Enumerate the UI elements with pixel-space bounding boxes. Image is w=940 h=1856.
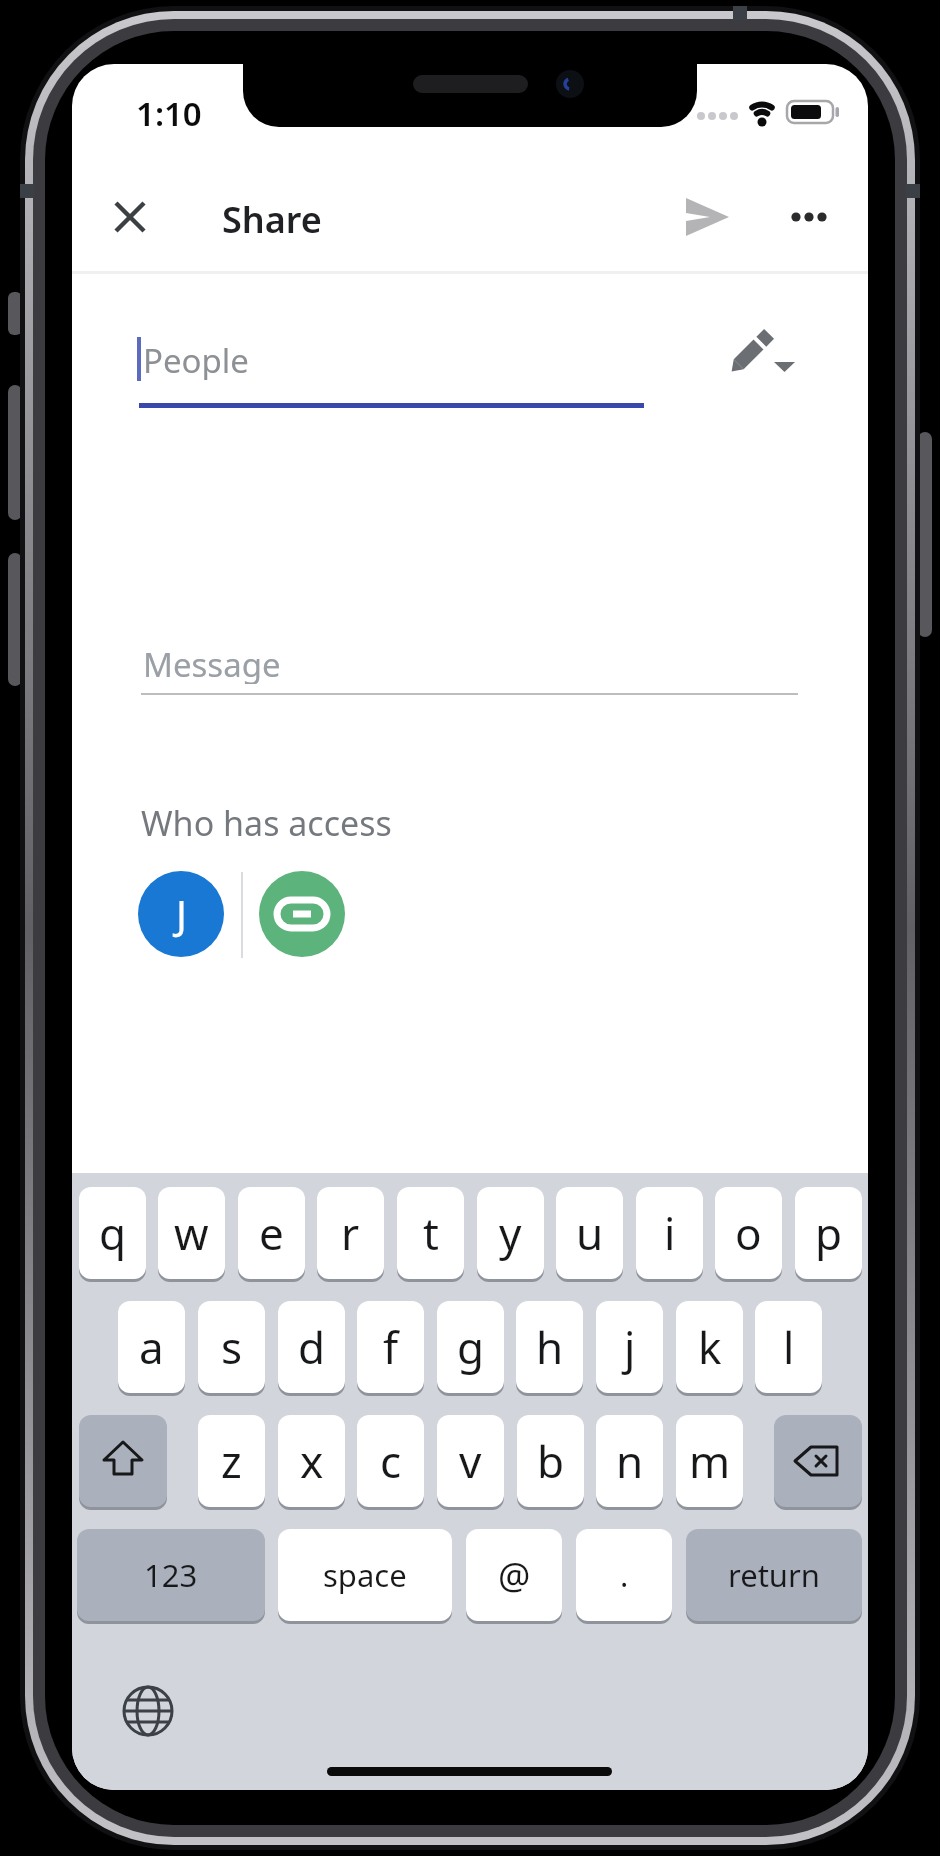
staticText: g xyxy=(457,1317,485,1377)
button[interactable]: s xyxy=(198,1301,265,1393)
button[interactable]: w xyxy=(158,1187,225,1279)
button[interactable]: x xyxy=(278,1415,345,1507)
button[interactable]: @ xyxy=(466,1529,562,1621)
button[interactable]: c xyxy=(357,1415,424,1507)
button[interactable]: h xyxy=(516,1301,583,1393)
button[interactable]: l xyxy=(755,1301,822,1393)
staticText: s xyxy=(221,1317,243,1377)
staticText: z xyxy=(221,1431,242,1491)
button[interactable]: y xyxy=(477,1187,544,1279)
button[interactable]: 123 xyxy=(77,1529,265,1621)
staticText: x xyxy=(300,1431,324,1491)
staticText: j xyxy=(624,1317,636,1377)
staticText: r xyxy=(341,1203,360,1263)
staticText: b xyxy=(537,1431,565,1491)
button[interactable]: . xyxy=(576,1529,672,1621)
staticText: i xyxy=(664,1203,676,1263)
staticText: q xyxy=(99,1203,127,1263)
staticText: Share xyxy=(222,195,322,239)
button[interactable]: q xyxy=(79,1187,146,1279)
staticText: People xyxy=(143,338,249,380)
staticText: e xyxy=(259,1203,284,1263)
button[interactable]: o xyxy=(715,1187,782,1279)
button[interactable] xyxy=(79,1415,167,1507)
staticText: a xyxy=(139,1317,164,1377)
staticText: Message xyxy=(143,642,281,684)
button[interactable]: n xyxy=(596,1415,663,1507)
button[interactable]: a xyxy=(118,1301,185,1393)
staticText: p xyxy=(815,1203,843,1263)
button[interactable] xyxy=(259,871,345,957)
button[interactable]: k xyxy=(676,1301,743,1393)
button[interactable] xyxy=(782,203,838,231)
staticText: w xyxy=(174,1203,209,1263)
staticText: v xyxy=(459,1431,482,1491)
button[interactable] xyxy=(678,192,734,242)
staticText: space xyxy=(323,1554,407,1596)
staticText: t xyxy=(423,1203,439,1263)
staticText: Who has access xyxy=(141,800,392,844)
staticText: 1:10 xyxy=(136,91,202,133)
staticText: k xyxy=(698,1317,722,1377)
button[interactable]: i xyxy=(636,1187,703,1279)
button[interactable]: m xyxy=(676,1415,743,1507)
staticText: u xyxy=(576,1203,604,1263)
button[interactable] xyxy=(122,1685,174,1737)
button[interactable]: z xyxy=(198,1415,265,1507)
button[interactable]: f xyxy=(357,1301,424,1393)
button[interactable] xyxy=(717,326,807,386)
button[interactable]: g xyxy=(437,1301,504,1393)
button[interactable]: v xyxy=(437,1415,504,1507)
staticText: @ xyxy=(498,1551,531,1600)
button[interactable]: u xyxy=(556,1187,623,1279)
button[interactable] xyxy=(108,195,152,239)
button[interactable]: return xyxy=(686,1529,862,1621)
staticText: y xyxy=(499,1203,522,1263)
button[interactable]: J xyxy=(138,871,224,957)
staticText: f xyxy=(383,1317,399,1377)
staticText: o xyxy=(735,1203,762,1263)
staticText: d xyxy=(298,1317,326,1377)
button[interactable]: b xyxy=(517,1415,584,1507)
button[interactable]: r xyxy=(317,1187,384,1279)
button[interactable] xyxy=(774,1415,862,1507)
button[interactable]: p xyxy=(795,1187,862,1279)
staticText: l xyxy=(783,1317,795,1377)
staticText: 123 xyxy=(144,1554,198,1596)
staticText: c xyxy=(380,1431,402,1491)
staticText: J xyxy=(176,887,187,941)
staticText: n xyxy=(616,1431,644,1491)
button[interactable]: e xyxy=(238,1187,305,1279)
staticText: m xyxy=(689,1431,731,1491)
button[interactable]: j xyxy=(596,1301,663,1393)
staticText: . xyxy=(620,1554,629,1596)
button[interactable]: t xyxy=(397,1187,464,1279)
button[interactable]: space xyxy=(278,1529,452,1621)
staticText: h xyxy=(536,1317,564,1377)
button[interactable]: d xyxy=(278,1301,345,1393)
staticText: return xyxy=(728,1554,820,1596)
